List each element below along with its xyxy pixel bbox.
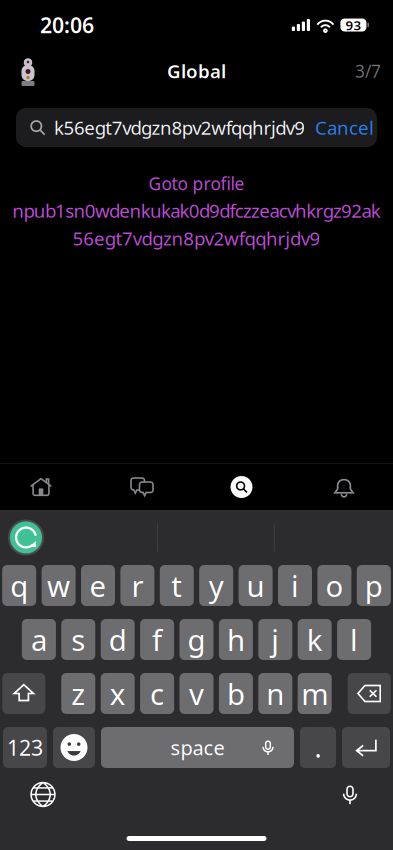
button[interactable]: k56egt7vdgzn8pv2wfqqhrjdv9	[16, 108, 312, 147]
button[interactable]: y	[199, 565, 233, 606]
button[interactable]: n	[258, 673, 292, 714]
staticText: 123	[7, 733, 43, 762]
staticText: q	[10, 566, 28, 605]
staticText: 56egt7vdgzn8pv2wfqqhrjdv9	[73, 226, 320, 251]
staticText: s	[71, 620, 85, 659]
staticText: k	[307, 620, 323, 659]
staticText: l	[350, 620, 358, 659]
staticText: i	[291, 566, 299, 605]
button[interactable]: i	[278, 565, 312, 606]
button[interactable]: 3/7	[337, 51, 381, 91]
button[interactable]: Search	[192, 464, 290, 510]
button[interactable]: Return	[342, 727, 390, 768]
staticText: r	[131, 566, 143, 605]
staticText: m	[301, 674, 328, 713]
button[interactable]: e	[81, 565, 115, 606]
button[interactable]: s	[61, 619, 95, 660]
button[interactable]: a	[22, 619, 56, 660]
staticText: b	[227, 674, 245, 713]
staticText: t	[171, 566, 182, 605]
staticText: e	[89, 566, 106, 605]
staticText: npub1sn0wdenkukak0d9dfczzeacvhkrgz92ak	[12, 198, 381, 223]
button[interactable]: o	[317, 565, 351, 606]
button[interactable]: h	[219, 619, 253, 660]
button[interactable]: .	[300, 727, 336, 768]
staticText: v	[189, 674, 204, 713]
button[interactable]: b	[219, 673, 253, 714]
staticText: .	[314, 730, 321, 765]
button[interactable]: c	[140, 673, 174, 714]
staticText: p	[365, 566, 383, 605]
staticText: u	[247, 566, 265, 605]
button[interactable]: t	[160, 565, 194, 606]
staticText: c	[150, 674, 164, 713]
button[interactable]: w	[42, 565, 76, 606]
button[interactable]: Cancel	[312, 108, 377, 147]
staticText: 20:06	[40, 11, 94, 39]
staticText: w	[47, 566, 70, 605]
staticText: n	[266, 674, 284, 713]
staticText: o	[325, 566, 343, 605]
button[interactable]: 123	[3, 727, 47, 768]
staticText: 3/7	[355, 59, 381, 82]
button[interactable]: f	[140, 619, 174, 660]
staticText: g	[187, 620, 205, 659]
button[interactable]: j	[258, 619, 292, 660]
button[interactable]: r	[120, 565, 154, 606]
staticText: x	[110, 674, 126, 713]
button[interactable]: Messages	[94, 464, 190, 510]
button[interactable]: z	[61, 673, 95, 714]
staticText: d	[109, 620, 127, 659]
staticText: y	[209, 566, 224, 605]
button[interactable]: space	[101, 727, 294, 768]
staticText: Cancel	[315, 115, 374, 140]
staticText: f	[152, 620, 162, 659]
button[interactable]: d	[101, 619, 135, 660]
button[interactable]: Shift	[2, 673, 45, 714]
button[interactable]: p	[357, 565, 391, 606]
button[interactable]: Switch keyboard	[17, 773, 69, 815]
button[interactable]: Dictate	[324, 773, 376, 815]
staticText: Global	[167, 59, 226, 83]
button[interactable]: x	[101, 673, 135, 714]
button[interactable]: Notifications	[295, 464, 393, 510]
staticText: 93	[345, 16, 361, 34]
staticText: Goto profile	[148, 172, 244, 195]
button[interactable]: g	[179, 619, 213, 660]
button[interactable]: v	[179, 673, 213, 714]
button[interactable]: q	[2, 565, 36, 606]
button[interactable]: Profile	[6, 51, 50, 91]
button[interactable]: Emoji	[53, 727, 95, 768]
button[interactable]: Home	[0, 464, 82, 510]
button[interactable]: m	[298, 673, 332, 714]
staticText: space	[170, 734, 224, 761]
staticText: k56egt7vdgzn8pv2wfqqhrjdv9	[54, 115, 304, 140]
staticText: h	[227, 620, 245, 659]
button[interactable]: k	[298, 619, 332, 660]
staticText: a	[31, 620, 47, 659]
button[interactable]: Grammarly	[4, 515, 48, 559]
button[interactable]: u	[239, 565, 273, 606]
button[interactable]: Delete	[348, 673, 391, 714]
staticText: z	[71, 674, 85, 713]
button[interactable]: l	[337, 619, 371, 660]
staticText: j	[271, 620, 279, 659]
